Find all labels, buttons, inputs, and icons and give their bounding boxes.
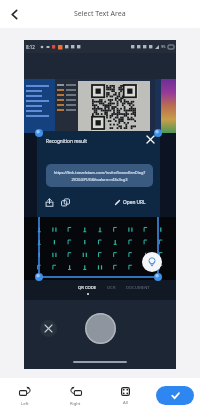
button[interactable]: Share: [42, 195, 56, 209]
staticText: Left: [21, 401, 29, 407]
button[interactable]: Copy: [58, 195, 72, 209]
button[interactable]: QR CODE: [78, 285, 97, 291]
staticText: Recognition result: [46, 138, 87, 145]
button[interactable]: Back: [4, 4, 24, 24]
staticText: Right: [70, 401, 81, 407]
button[interactable]: Close: [40, 320, 57, 337]
button[interactable]: All: [100, 378, 150, 412]
button[interactable]: Open URL: [113, 195, 147, 209]
button[interactable]: Close dialog: [144, 133, 157, 146]
staticText: 8:12: [26, 44, 35, 50]
button[interactable]: Confirm: [156, 386, 194, 405]
button[interactable]: https://link.travelstars.com/invite/bran…: [46, 164, 153, 187]
button[interactable]: Shutter: [85, 313, 116, 344]
button[interactable]: Right: [50, 378, 100, 412]
button[interactable]: Left: [0, 378, 50, 412]
staticText: All: [123, 400, 128, 406]
staticText: Select Text Area: [74, 9, 126, 19]
button[interactable]: DOCUMENT: [126, 287, 150, 293]
staticText: Open URL: [123, 199, 146, 206]
button[interactable]: OCR: [107, 287, 116, 293]
staticText: https://link.travelstars.com/invite/bran…: [51, 170, 148, 182]
staticText: 95: [161, 44, 166, 49]
button[interactable]: Detect: [142, 252, 162, 272]
